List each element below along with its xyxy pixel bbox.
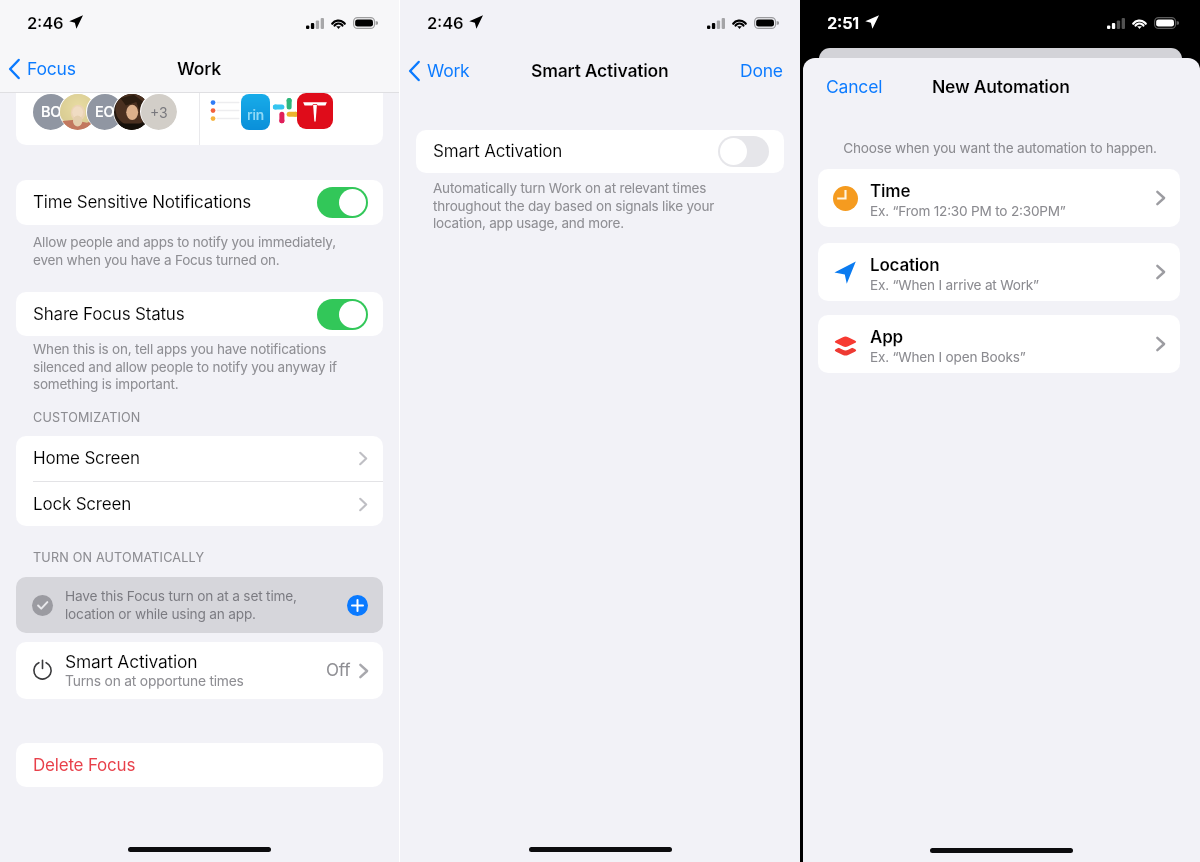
staticText: Time Sensitive Notifications <box>33 192 252 213</box>
staticText: CUSTOMIZATION <box>33 410 141 425</box>
staticText: EO <box>95 103 115 121</box>
staticText: Allow people and apps to notify you imme… <box>33 234 336 268</box>
staticText: Cancel <box>826 76 883 97</box>
button[interactable]: On <box>317 299 368 330</box>
other: Back <box>409 61 420 81</box>
staticText: Ex. “When I open Books” <box>870 349 1026 365</box>
staticText: Location <box>870 255 940 276</box>
button[interactable]: App <box>818 315 1180 373</box>
button[interactable]: Share Focus Status <box>16 292 383 336</box>
button[interactable]: Time <box>818 169 1180 227</box>
staticText: Off <box>326 660 351 681</box>
button[interactable]: On <box>317 187 368 218</box>
staticText: Smart Activation <box>65 651 198 672</box>
button[interactable]: Off <box>718 136 769 167</box>
staticText: Smart Activation <box>531 60 669 81</box>
staticText: When this is on, tell apps you have noti… <box>33 341 337 392</box>
staticText: Work <box>427 60 470 81</box>
staticText: Lock Screen <box>33 494 132 515</box>
staticText: BO <box>41 103 62 121</box>
staticText: Focus <box>27 58 76 79</box>
button[interactable]: Add automation <box>347 595 368 616</box>
button[interactable]: Lock Screen <box>16 482 383 526</box>
staticText: Work <box>177 58 222 79</box>
staticText: Turns on at opportune times <box>65 673 244 690</box>
button[interactable]: Back <box>409 60 470 81</box>
staticText: rin <box>247 106 264 123</box>
staticText: Done <box>740 60 783 81</box>
staticText: Time <box>870 181 911 202</box>
staticText: Choose when you want the automation to h… <box>803 140 1197 156</box>
button[interactable]: Back <box>9 58 76 79</box>
button[interactable]: Delete Focus <box>16 743 383 787</box>
staticText: Home Screen <box>33 448 140 469</box>
staticText: Ex. “From 12:30 PM to 2:30PM” <box>870 203 1066 219</box>
button[interactable]: Time Sensitive Notifications <box>16 180 383 225</box>
staticText: Share Focus Status <box>33 304 185 325</box>
staticText: 2:46 <box>427 13 464 33</box>
staticText: Automatically turn Work on at relevant t… <box>433 180 715 231</box>
staticText: +3 <box>150 104 168 121</box>
staticText: Have this Focus turn on at a set time, l… <box>65 588 297 622</box>
button[interactable]: BO <box>16 93 383 145</box>
staticText: Ex. “When I arrive at Work” <box>870 277 1039 293</box>
other: Back <box>9 59 20 79</box>
button[interactable]: Home Screen <box>16 436 383 481</box>
button[interactable]: Smart Activation <box>16 642 383 699</box>
staticText: New Automation <box>932 76 1070 97</box>
button[interactable]: Done <box>740 60 783 81</box>
staticText: 2:51 <box>827 13 860 33</box>
button[interactable]: Location <box>818 243 1180 301</box>
staticText: App <box>870 327 903 348</box>
button[interactable]: Smart Activation <box>416 130 784 173</box>
staticText: Smart Activation <box>433 141 563 162</box>
staticText: TURN ON AUTOMATICALLY <box>33 550 205 565</box>
staticText: 2:46 <box>27 13 64 33</box>
staticText: Delete Focus <box>33 755 136 776</box>
button[interactable]: Have this Focus turn on at a set time, l… <box>16 577 383 633</box>
button[interactable]: Cancel <box>826 76 883 97</box>
